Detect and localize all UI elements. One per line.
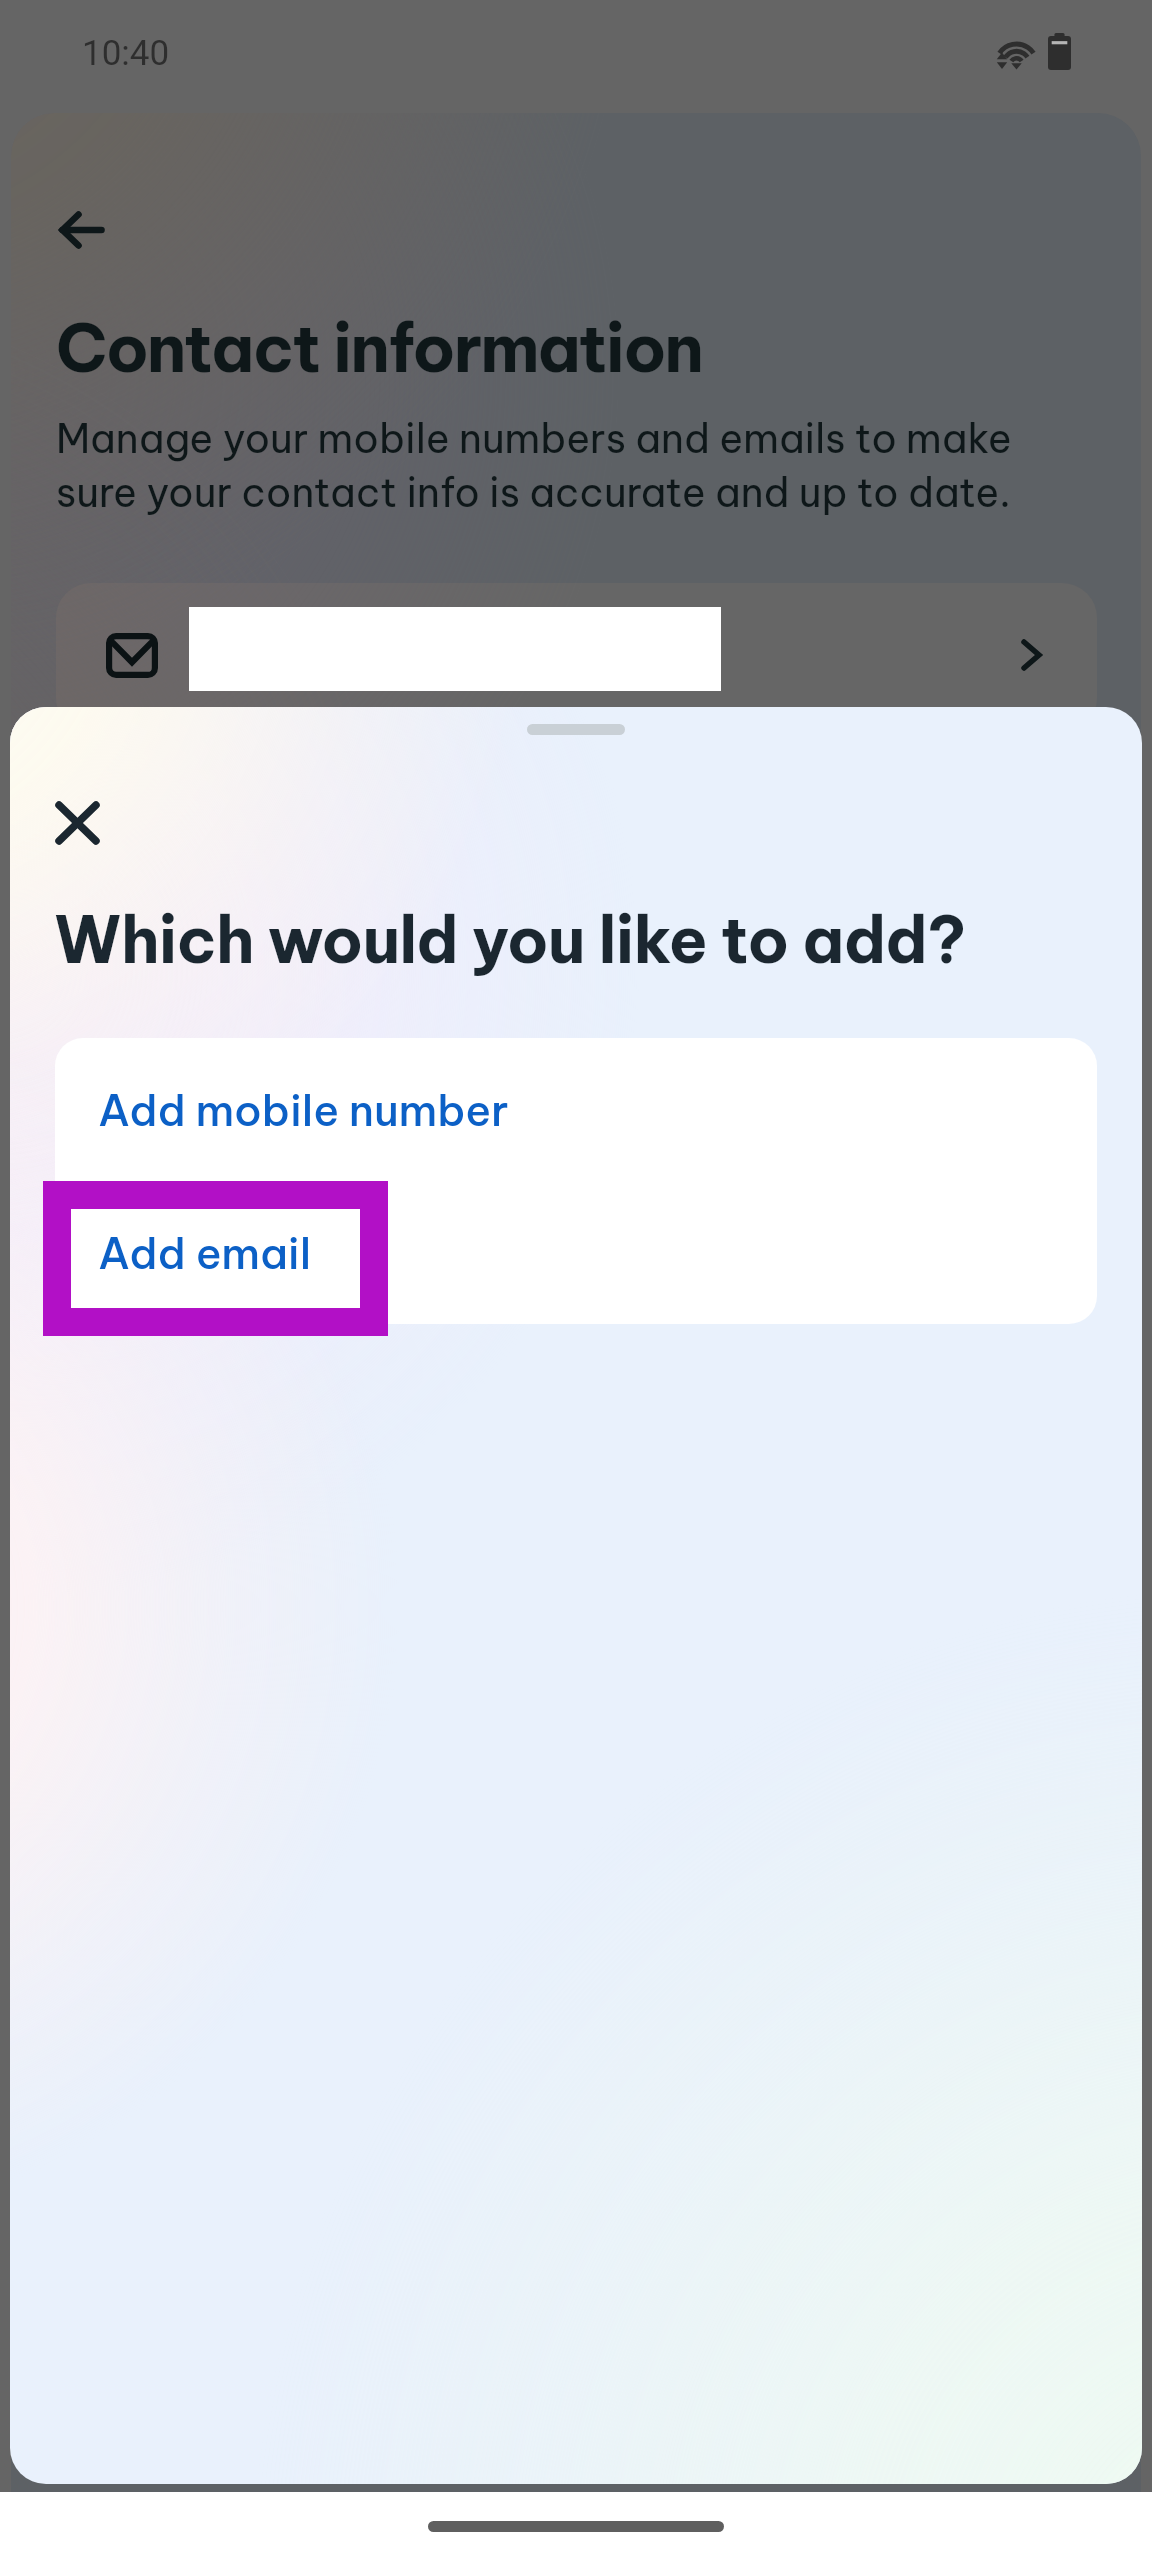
button[interactable]: Add email: [55, 1181, 1097, 1324]
staticText: Add mobile number: [98, 1083, 509, 1137]
button[interactable]: Close: [29, 775, 125, 871]
staticText: Contact information: [56, 306, 703, 389]
staticText: Which would you like to add?: [54, 899, 966, 980]
staticText: Add email: [98, 1226, 312, 1280]
button[interactable]: Add mobile number: [55, 1038, 1097, 1181]
button[interactable]: [56, 583, 1097, 733]
button[interactable]: Back: [35, 195, 129, 265]
staticText: Manage your mobile numbers and emails to…: [56, 413, 1046, 517]
staticText: 10:40: [82, 33, 170, 74]
